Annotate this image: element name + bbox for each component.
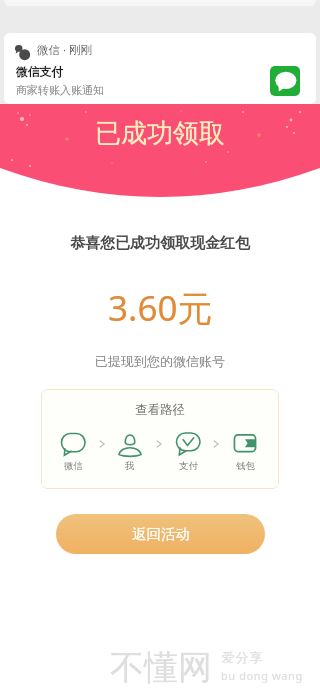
staticText: 3.60元 (108, 284, 213, 332)
staticText: 商家转账入账通知 (16, 83, 104, 97)
staticText: 已成功领取 (95, 117, 225, 150)
button[interactable]: 微信 · 刚刚 (4, 33, 316, 104)
staticText: 我 (125, 460, 135, 472)
staticText: 返回活动 (132, 525, 190, 543)
staticText: 查看路径 (135, 402, 185, 418)
staticText: 支付 (179, 460, 198, 472)
staticText: 恭喜您已成功领取现金红包 (70, 234, 250, 253)
staticText: 钱包 (236, 460, 255, 472)
button[interactable]: 返回活动 (56, 514, 265, 554)
staticText: 微信支付 (16, 65, 64, 80)
staticText: 微信 · 刚刚 (37, 42, 93, 58)
staticText: 不懂网 (110, 646, 212, 689)
staticText: 微信 (64, 460, 83, 472)
staticText: 爱分享 (221, 649, 263, 665)
staticText: bu dong wang (221, 668, 303, 683)
staticText: 已提现到您的微信账号 (95, 353, 225, 369)
